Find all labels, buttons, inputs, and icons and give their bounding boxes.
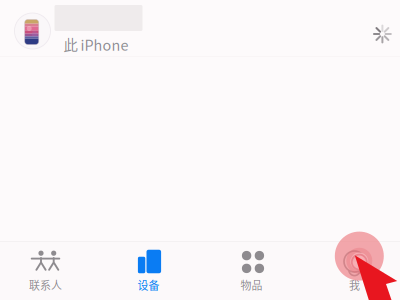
staticText: 物品 (240, 277, 262, 293)
staticText: 联系人 (29, 277, 62, 293)
staticText: 此 iPhone (63, 34, 128, 55)
button[interactable]: 物品 (200, 242, 303, 300)
button[interactable]: 我 (303, 242, 400, 300)
staticText: 我 (349, 277, 360, 293)
button[interactable]: 联系人 (0, 242, 97, 300)
button[interactable]: 设备 (97, 242, 200, 300)
button[interactable]: 此 iPhone (0, 0, 400, 56)
staticText: 设备 (137, 277, 159, 293)
